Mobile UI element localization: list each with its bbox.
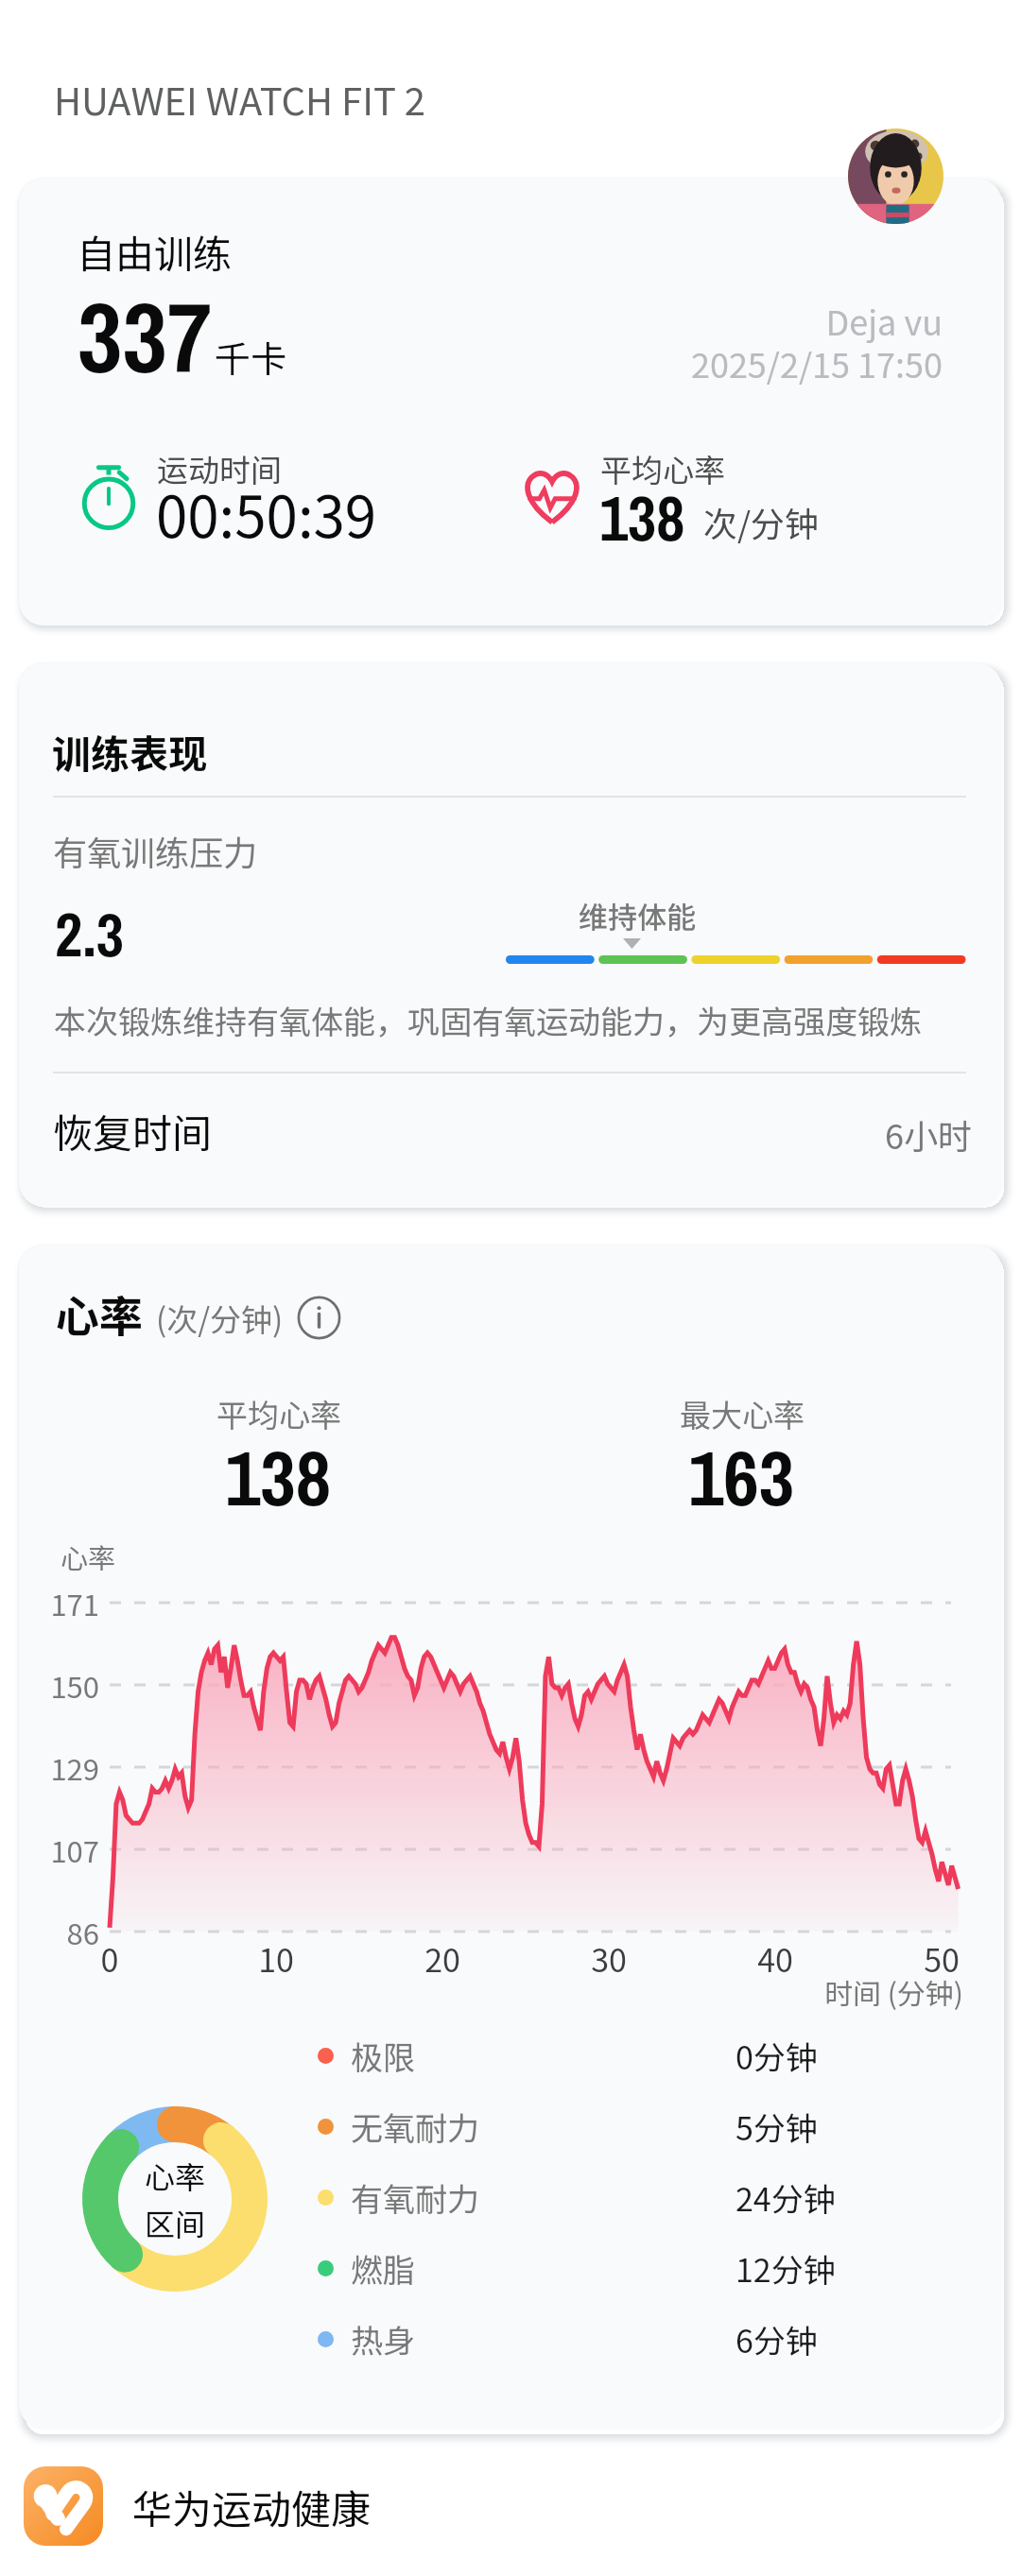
staticText: 运动时间 bbox=[157, 446, 282, 491]
staticText: 0分钟 bbox=[735, 2033, 818, 2079]
staticText: 2025/2/15 17:50 bbox=[545, 338, 943, 387]
staticText: 本次锻炼维持有氧体能，巩固有氧运动能力，为更高强度锻炼 bbox=[54, 997, 922, 1043]
staticText: 171 bbox=[19, 1582, 99, 1624]
staticText: 5分钟 bbox=[735, 2104, 818, 2150]
staticText: 20 bbox=[386, 1935, 499, 1982]
staticText: 热身 bbox=[351, 2316, 415, 2362]
staticText: 0 bbox=[53, 1935, 166, 1982]
staticText: 区间 bbox=[145, 2201, 206, 2244]
staticText: 138 bbox=[599, 476, 685, 560]
staticText: 次/分钟 bbox=[703, 497, 820, 546]
staticText: 极限 bbox=[351, 2033, 415, 2079]
button[interactable]: 无氧耐力 bbox=[303, 2091, 851, 2161]
staticText: 337 bbox=[78, 270, 213, 403]
staticText: 心率 bbox=[61, 1537, 116, 1576]
staticText: 最大心率 bbox=[600, 1391, 884, 1436]
staticText: 恢复时间 bbox=[53, 1102, 213, 1159]
staticText: 24分钟 bbox=[735, 2174, 836, 2221]
staticText: 时间 (分钟) bbox=[824, 1971, 963, 2012]
staticText: 10 bbox=[219, 1935, 333, 1982]
staticText: 163 bbox=[599, 1425, 883, 1529]
button[interactable]: 热身 bbox=[303, 2304, 851, 2374]
staticText: 138 bbox=[136, 1425, 420, 1529]
staticText: 有氧耐力 bbox=[351, 2174, 479, 2221]
staticText: 30 bbox=[552, 1935, 666, 1982]
staticText: 12分钟 bbox=[735, 2245, 836, 2292]
staticText: 有氧训练压力 bbox=[53, 826, 258, 875]
staticText: 00:50:39 bbox=[156, 472, 377, 554]
staticText: 心率 bbox=[145, 2154, 206, 2197]
button[interactable]: 华为运动健康 bbox=[0, 2457, 1021, 2555]
staticText: 40 bbox=[718, 1935, 832, 1982]
staticText: 129 bbox=[19, 1746, 99, 1789]
button[interactable]: 极限 bbox=[303, 2020, 851, 2090]
staticText: 无氧耐力 bbox=[351, 2104, 479, 2150]
staticText: 50 bbox=[885, 1935, 998, 1982]
staticText: 燃脂 bbox=[351, 2245, 415, 2292]
staticText: Deja vu bbox=[640, 296, 943, 345]
staticText: 平均心率 bbox=[137, 1391, 421, 1436]
staticText: 心率 bbox=[56, 1282, 143, 1346]
staticText: 2.3 bbox=[55, 894, 124, 975]
button[interactable]: 燃脂 bbox=[303, 2233, 851, 2303]
button[interactable]: 有氧耐力 bbox=[303, 2162, 851, 2232]
staticText: 训练表现 bbox=[52, 723, 207, 779]
staticText: 自由训练 bbox=[77, 223, 232, 279]
staticText: 千卡 bbox=[215, 331, 287, 383]
staticText: HUAWEI WATCH FIT 2 bbox=[54, 72, 426, 127]
staticText: 6小时 bbox=[688, 1109, 972, 1159]
staticText: 维持体能 bbox=[579, 894, 696, 936]
staticText: 平均心率 bbox=[600, 446, 725, 491]
staticText: 150 bbox=[19, 1664, 99, 1707]
staticText: 86 bbox=[19, 1911, 99, 1953]
staticText: 华为运动健康 bbox=[132, 2478, 372, 2535]
staticText: 6分钟 bbox=[735, 2316, 818, 2362]
staticText: (次/分钟) bbox=[156, 1296, 284, 1341]
button[interactable]: Info bbox=[296, 1295, 342, 1341]
staticText: 107 bbox=[19, 1829, 99, 1871]
button[interactable]: Profile bbox=[848, 129, 943, 224]
